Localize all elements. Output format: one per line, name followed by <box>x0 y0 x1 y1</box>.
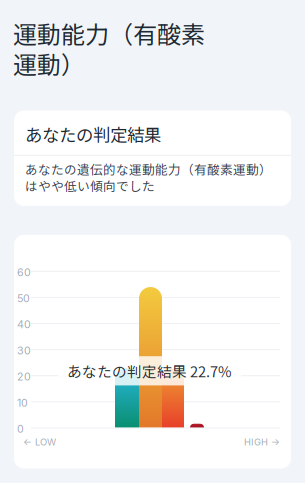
staticText: あなたの遺伝的な運動能力（有酸素運動）はやや低い傾向でした <box>25 161 272 194</box>
staticText: 20 <box>17 370 31 383</box>
staticText: あなたの判定結果 22.7% <box>67 360 232 381</box>
staticText: 40 <box>17 318 31 331</box>
staticText: 60 <box>17 266 31 279</box>
staticText: HIGH → <box>244 436 280 448</box>
staticText: あなたの判定結果 <box>25 123 161 145</box>
staticText: 50 <box>17 292 30 305</box>
staticText: 30 <box>17 344 31 357</box>
staticText: 10 <box>17 396 28 409</box>
staticText: 運動能力（有酸素運動） <box>13 18 205 78</box>
staticText: 0 <box>17 422 24 435</box>
staticText: ← LOW <box>23 436 56 448</box>
